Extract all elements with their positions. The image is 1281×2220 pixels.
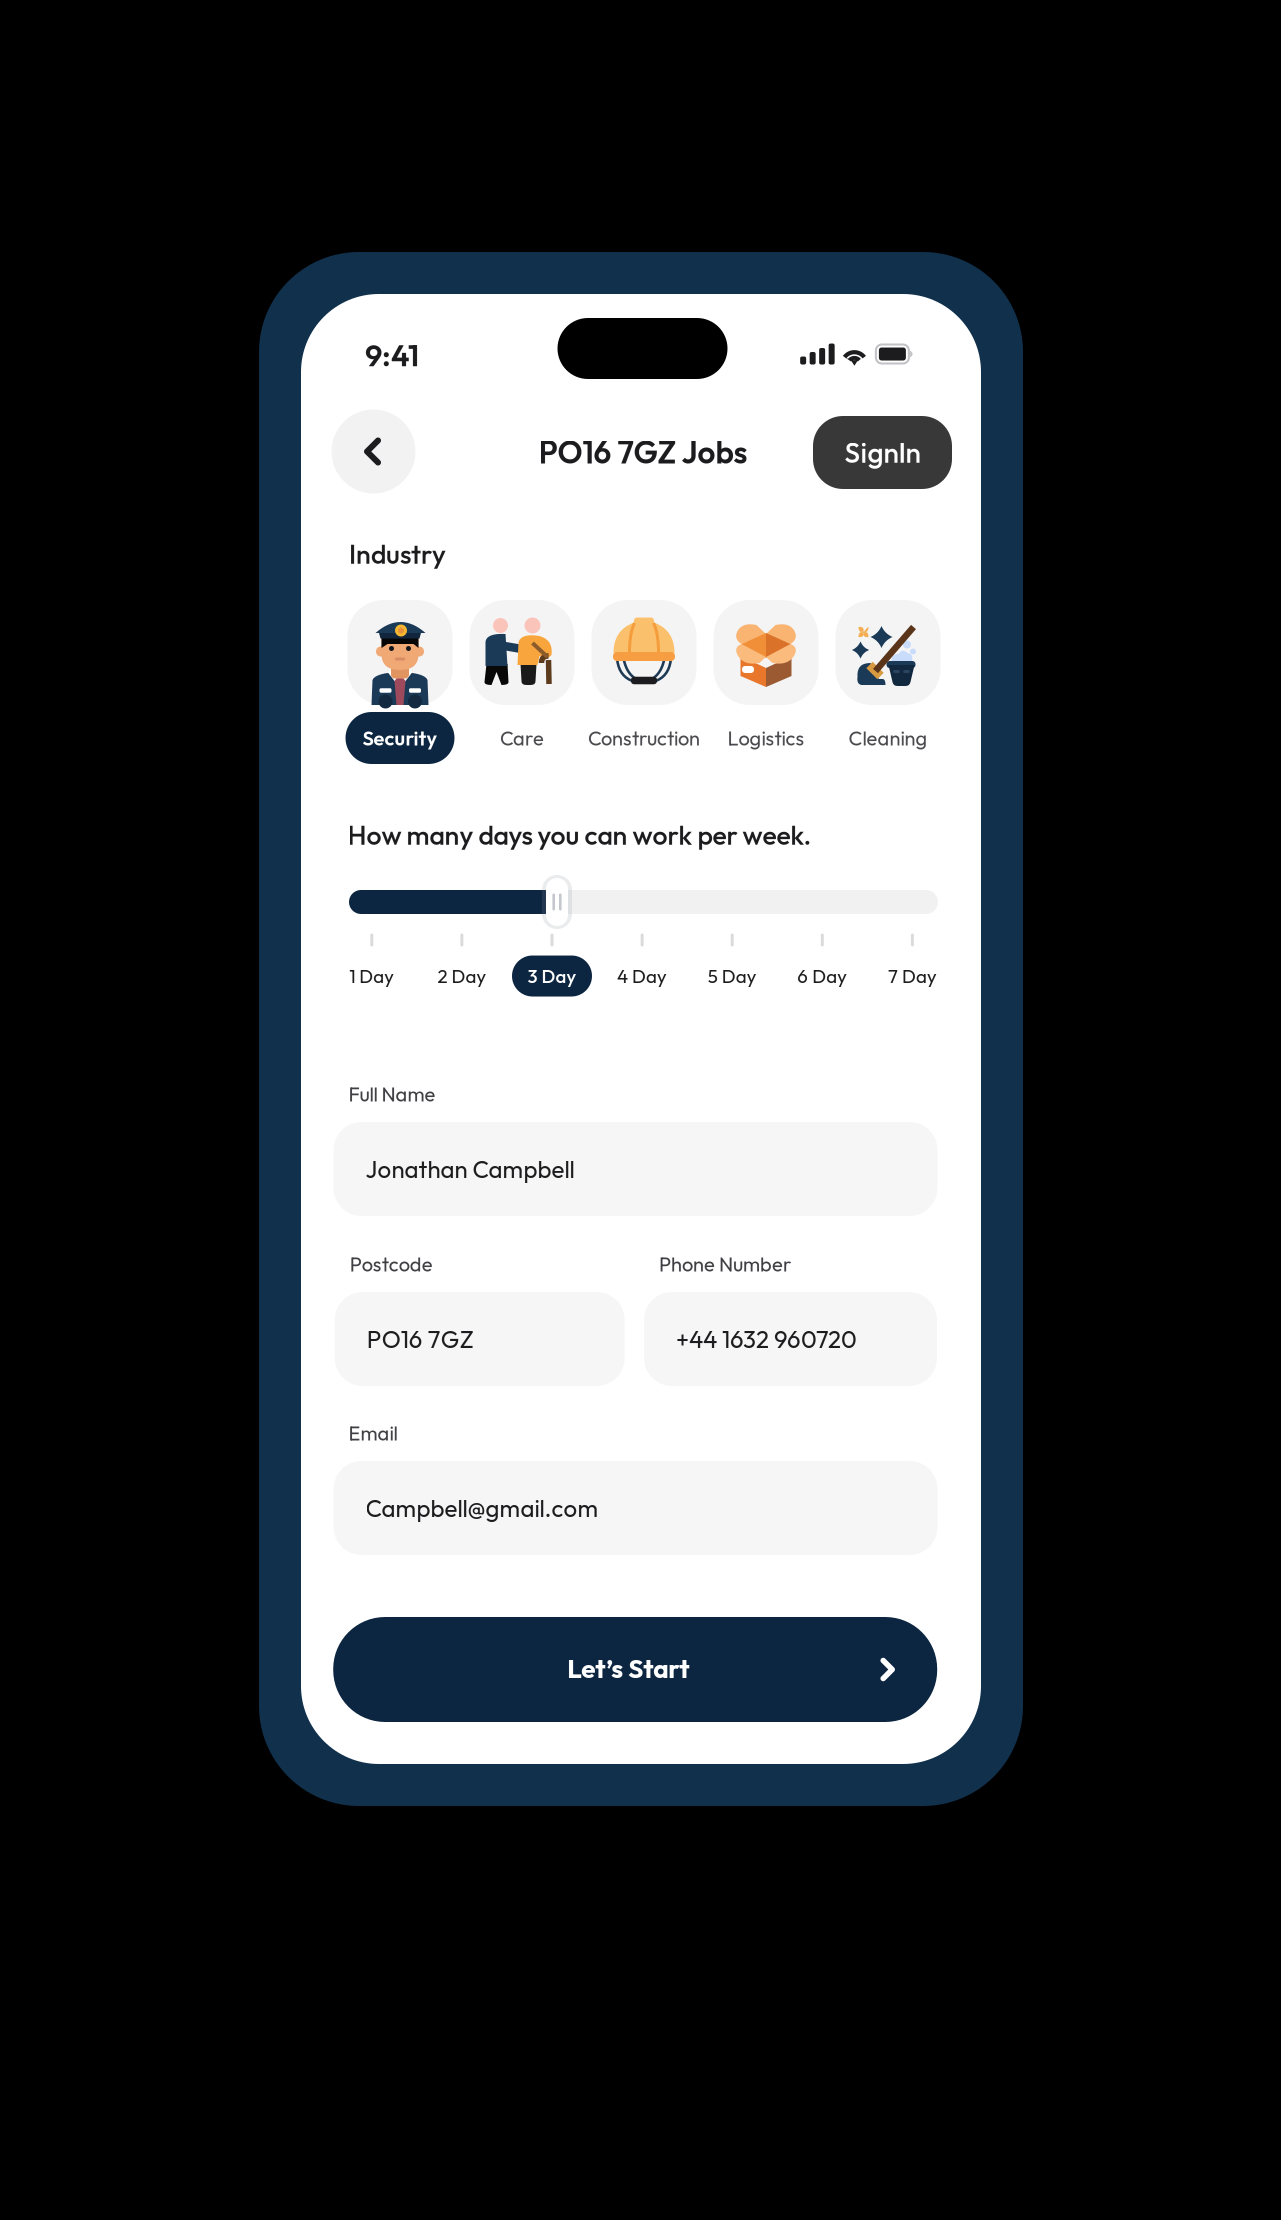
button[interactable]: SignIn	[813, 416, 952, 489]
staticText: Logistics	[727, 725, 804, 751]
button[interactable]: 4 Day	[602, 955, 682, 996]
staticText: PO16 7GZ	[367, 1324, 474, 1354]
button[interactable]: Construction	[556, 600, 732, 770]
staticText: 7 Day	[888, 964, 937, 988]
button[interactable]: Logistics	[678, 600, 854, 770]
staticText: 4 Day	[617, 964, 667, 988]
staticText: Email	[348, 1420, 397, 1446]
staticText: 2 Day	[437, 964, 486, 988]
button[interactable]: Care	[434, 600, 610, 770]
button[interactable]: 5 Day	[692, 955, 772, 996]
button[interactable]: 3 Day	[512, 955, 592, 996]
staticText: Campbell@gmail.com	[365, 1493, 598, 1523]
button[interactable]: 6 Day	[782, 955, 862, 996]
staticText: Full Name	[348, 1081, 435, 1107]
button[interactable]: 2 Day	[422, 955, 502, 996]
staticText: Construction	[588, 725, 700, 751]
button[interactable]: Let’s Start	[333, 1617, 937, 1722]
staticText: Industry	[349, 537, 446, 571]
button[interactable]: 1 Day	[332, 955, 412, 996]
button[interactable]: 7 Day	[872, 955, 952, 996]
button[interactable]: Security	[312, 600, 488, 770]
staticText: Jonathan Campbell	[365, 1154, 574, 1184]
staticText: Cleaning	[848, 725, 927, 751]
staticText: 1 Day	[349, 964, 394, 988]
staticText: 5 Day	[708, 964, 757, 988]
staticText: +44 1632 960720	[676, 1324, 857, 1354]
staticText: 9:41	[365, 336, 419, 374]
staticText: Phone Number	[659, 1251, 791, 1277]
staticText: Postcode	[350, 1251, 433, 1277]
button[interactable]: Back	[331, 409, 415, 493]
staticText: 3 Day	[527, 964, 576, 988]
staticText: SignIn	[844, 435, 920, 470]
staticText: PO16 7GZ Jobs	[538, 432, 747, 472]
button[interactable]: Cleaning	[800, 600, 976, 770]
staticText: 6 Day	[797, 964, 847, 988]
staticText: How many days you can work per week.	[347, 818, 811, 852]
staticText: Care	[500, 725, 544, 751]
staticText: Security	[362, 725, 437, 751]
staticText: Let’s Start	[567, 1652, 689, 1685]
